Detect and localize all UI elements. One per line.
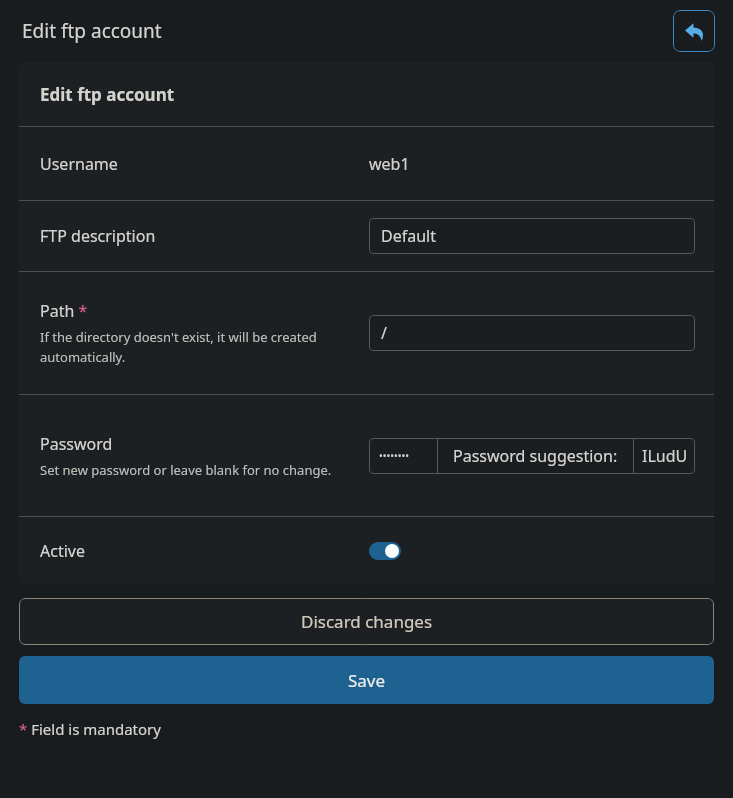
staticText: ILudU (642, 445, 688, 467)
staticText: Edit ftp account (22, 18, 162, 44)
staticText: Active (40, 540, 85, 562)
staticText: Edit ftp account (40, 83, 175, 106)
staticText: Path * (40, 300, 88, 322)
staticText: / (381, 322, 387, 344)
button[interactable]: Save (19, 656, 714, 704)
staticText: If the directory doesn't exist, it will … (40, 328, 355, 366)
staticText: Username (40, 153, 118, 175)
button[interactable]: / (369, 315, 695, 351)
staticText: web1 (369, 153, 410, 175)
button[interactable]: Password suggestion: (438, 438, 633, 474)
staticText: Password suggestion: (453, 445, 618, 467)
staticText: Default (381, 225, 436, 247)
staticText: FTP description (40, 225, 156, 247)
staticText: Set new password or leave blank for no c… (40, 461, 332, 479)
button[interactable]: Username (19, 127, 714, 200)
staticText: Save (348, 669, 386, 692)
button[interactable]: •••••••• (369, 438, 437, 474)
button[interactable]: Default (369, 218, 695, 254)
staticText: •••••••• (379, 449, 410, 463)
staticText: * Field is mandatory (19, 719, 161, 739)
button[interactable]: Active (19, 517, 714, 584)
button[interactable]: Discard changes (19, 598, 714, 645)
staticText: Password (40, 433, 113, 455)
button[interactable]: Back (673, 10, 715, 52)
button[interactable]: ILudU (634, 438, 695, 474)
button[interactable]: Active (369, 542, 401, 560)
staticText: Discard changes (301, 610, 433, 633)
